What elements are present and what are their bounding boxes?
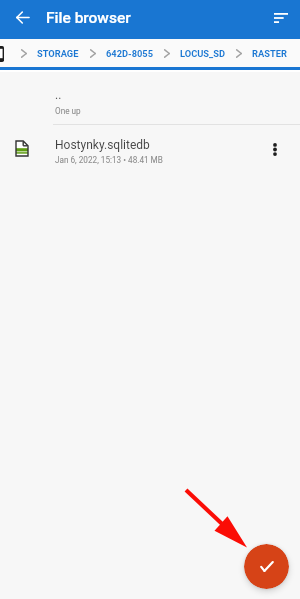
button[interactable]: STORAGE: [37, 42, 79, 65]
staticText: File browser: [46, 9, 131, 27]
button[interactable]: 642D-8055: [106, 42, 153, 65]
button[interactable]: Hostynky.sqlitedb: [0, 138, 300, 168]
button[interactable]: RASTER: [252, 42, 287, 65]
staticText: LOCUS_SD: [180, 48, 225, 59]
staticText: 642D-8055: [106, 48, 153, 59]
button[interactable]: ..: [0, 88, 300, 125]
staticText: STORAGE: [37, 48, 79, 59]
staticText: One up: [55, 106, 81, 116]
staticText: ..: [55, 88, 62, 102]
staticText: Jan 6, 2022, 15:13 • 48.41 MB: [55, 155, 163, 165]
staticText: Hostynky.sqlitedb: [55, 138, 150, 152]
staticText: RASTER: [252, 48, 287, 59]
button[interactable]: Back: [0, 0, 44, 39]
button[interactable]: Device storage: [0, 44, 7, 64]
button[interactable]: LOCUS_SD: [180, 42, 225, 65]
button[interactable]: Confirm selection: [244, 544, 289, 589]
button[interactable]: More options: [266, 138, 300, 168]
button[interactable]: Sort: [262, 0, 300, 39]
